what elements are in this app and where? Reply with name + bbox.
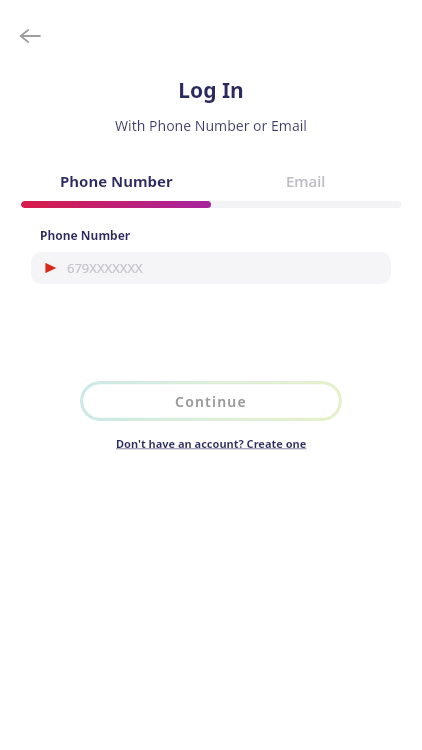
button[interactable]: Don't have an account? Create one (110, 434, 313, 453)
staticText: 679XXXXXXX (67, 259, 143, 277)
staticText: Log In (0, 76, 422, 105)
staticText: Don't have an account? Create one (116, 436, 307, 451)
button[interactable]: Back (12, 18, 48, 54)
button[interactable]: Email (211, 168, 401, 194)
staticText: Phone Number (40, 227, 131, 243)
staticText: Email (286, 171, 326, 191)
button[interactable]: Continue (80, 381, 342, 421)
button[interactable]: Phone Number (21, 168, 211, 194)
button[interactable]: 679XXXXXXX (31, 252, 391, 284)
staticText: Continue (175, 392, 247, 411)
staticText: With Phone Number or Email (0, 116, 422, 135)
staticText: Phone Number (60, 171, 173, 191)
